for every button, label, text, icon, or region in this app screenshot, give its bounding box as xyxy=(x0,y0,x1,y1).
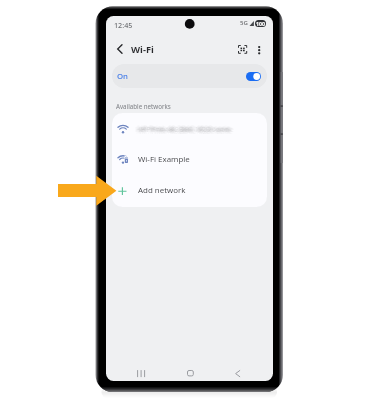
button[interactable]: More options xyxy=(251,42,266,57)
staticText: HP Print-48 2B4C 4520 serie xyxy=(135,124,228,134)
staticText: HP Print-48 2B4C 4520 serie xyxy=(136,126,229,136)
staticText: 5G xyxy=(240,19,248,27)
button[interactable]: On xyxy=(112,64,267,88)
button[interactable]: Add network xyxy=(112,175,267,206)
button[interactable]: Wi-Fi Example xyxy=(112,144,267,175)
staticText: HP Print-48 2B4C 4520 serie xyxy=(138,125,231,135)
button[interactable]: HP Print-48 2B4C 4520 serie xyxy=(112,113,267,144)
staticText: HP Print-48 2B4C 4520 serie xyxy=(136,123,229,133)
staticText: HP Print-48 2B4C 4520 serie xyxy=(138,126,231,136)
staticText: HP Print-48 2B4C 4520 serie xyxy=(139,126,232,136)
staticText: HP Print-48 2B4C 4520 serie xyxy=(141,124,234,134)
staticText: HP Print-48 2B4C 4520 serie xyxy=(138,122,231,132)
staticText: HP Print-48 2B4C 4520 serie xyxy=(140,123,233,133)
staticText: HP Print-48 2B4C 4520 serie xyxy=(139,123,232,133)
staticText: HP Print-48 2B4C 4520 serie xyxy=(137,124,230,134)
button[interactable]: Scan QR code xyxy=(235,42,250,57)
staticText: HP Print-48 2B4C 4520 serie xyxy=(137,125,230,135)
staticText: HP Print-48 2B4C 4520 serie xyxy=(135,124,228,134)
button[interactable]: Back xyxy=(112,41,128,57)
button[interactable]: Home xyxy=(181,364,199,381)
staticText: HP Print-48 2B4C 4520 serie xyxy=(140,126,233,136)
button[interactable]: Back xyxy=(228,364,246,381)
staticText: 100 xyxy=(256,20,265,27)
button[interactable]: Recent apps xyxy=(132,364,150,381)
staticText: HP Print-48 2B4C 4520 serie xyxy=(140,124,233,134)
staticText: Available networks xyxy=(116,102,171,110)
staticText: HP Print-48 2B4C 4520 serie xyxy=(139,124,232,134)
staticText: Wi-Fi xyxy=(131,43,154,56)
staticText: On xyxy=(117,71,129,82)
staticText: HP Print-48 2B4C 4520 serie xyxy=(138,123,231,133)
staticText: Add network xyxy=(138,185,186,196)
staticText: HP Print-48 2B4C 4520 serie xyxy=(137,122,230,132)
staticText: HP Print-48 2B4C 4520 serie xyxy=(139,125,232,135)
staticText: Wi-Fi Example xyxy=(138,154,190,165)
staticText: HP Print-48 2B4C 4520 serie xyxy=(141,124,234,134)
staticText: HP Print-48 2B4C 4520 serie xyxy=(136,124,229,134)
staticText: HP Print-48 2B4C 4520 serie xyxy=(137,123,230,133)
staticText: HP Print-48 2B4C 4520 serie xyxy=(138,124,231,134)
staticText: 12:45 xyxy=(114,20,133,30)
